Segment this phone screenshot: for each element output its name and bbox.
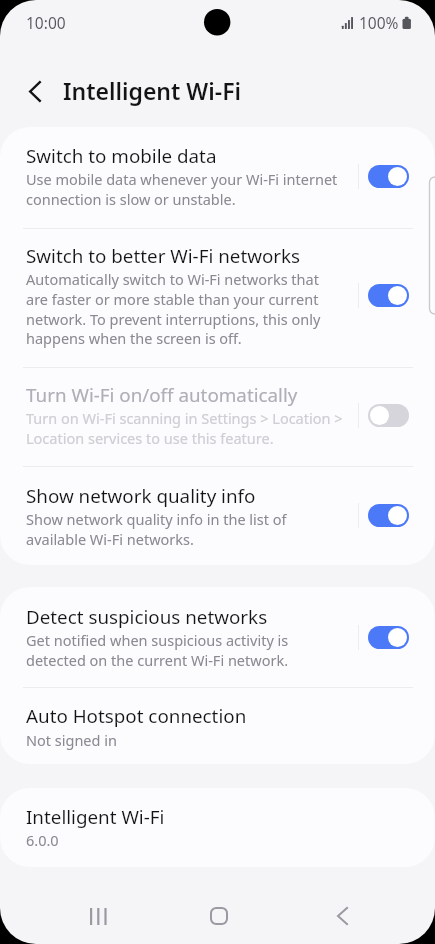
staticText: Location services to use this feature. [26,428,274,448]
button[interactable]: Navigate up [11,67,59,115]
staticText: Automatically switch to Wi-Fi networks t… [26,269,319,289]
button[interactable]: Toggle off [368,404,409,427]
button[interactable]: Toggle on [368,165,409,188]
staticText: connection is slow or unstable. [26,189,236,209]
button[interactable]: Toggle on [368,626,409,649]
staticText: Show network quality info in the list of [26,509,287,529]
staticText: Switch to mobile data [26,143,217,169]
staticText: 100% [359,12,399,33]
staticText: Show network quality info [26,483,256,509]
staticText: Turn Wi-Fi on/off automatically [26,382,298,408]
staticText: Use mobile data whenever your Wi-Fi inte… [26,169,338,189]
staticText: available Wi-Fi networks. [26,529,194,549]
button[interactable]: Toggle on [368,504,409,527]
staticText: 10:00 [26,12,66,33]
staticText: Not signed in [26,730,117,750]
staticText: Turn on Wi-Fi scanning in Settings > Loc… [26,408,343,428]
button[interactable]: Home [171,890,267,942]
staticText: 6.0.0 [26,830,59,850]
staticText: network. To prevent interruptions, this … [26,309,321,329]
staticText: Intelligent Wi-Fi [26,804,165,830]
staticText: are faster or more stable than your curr… [26,289,319,309]
staticText: Intelligent Wi-Fi [63,75,242,106]
button[interactable]: Toggle on [368,284,409,307]
staticText: Detect suspicious networks [26,604,268,630]
staticText: happens when the screen is off. [26,328,242,348]
button[interactable]: Back [294,890,390,942]
staticText: Get notified when suspicious activity is [26,630,289,650]
button[interactable]: Recents [50,890,146,942]
staticText: detected on the current Wi-Fi network. [26,650,289,670]
staticText: Switch to better Wi-Fi networks [26,243,301,269]
staticText: Auto Hotspot connection [26,703,247,729]
